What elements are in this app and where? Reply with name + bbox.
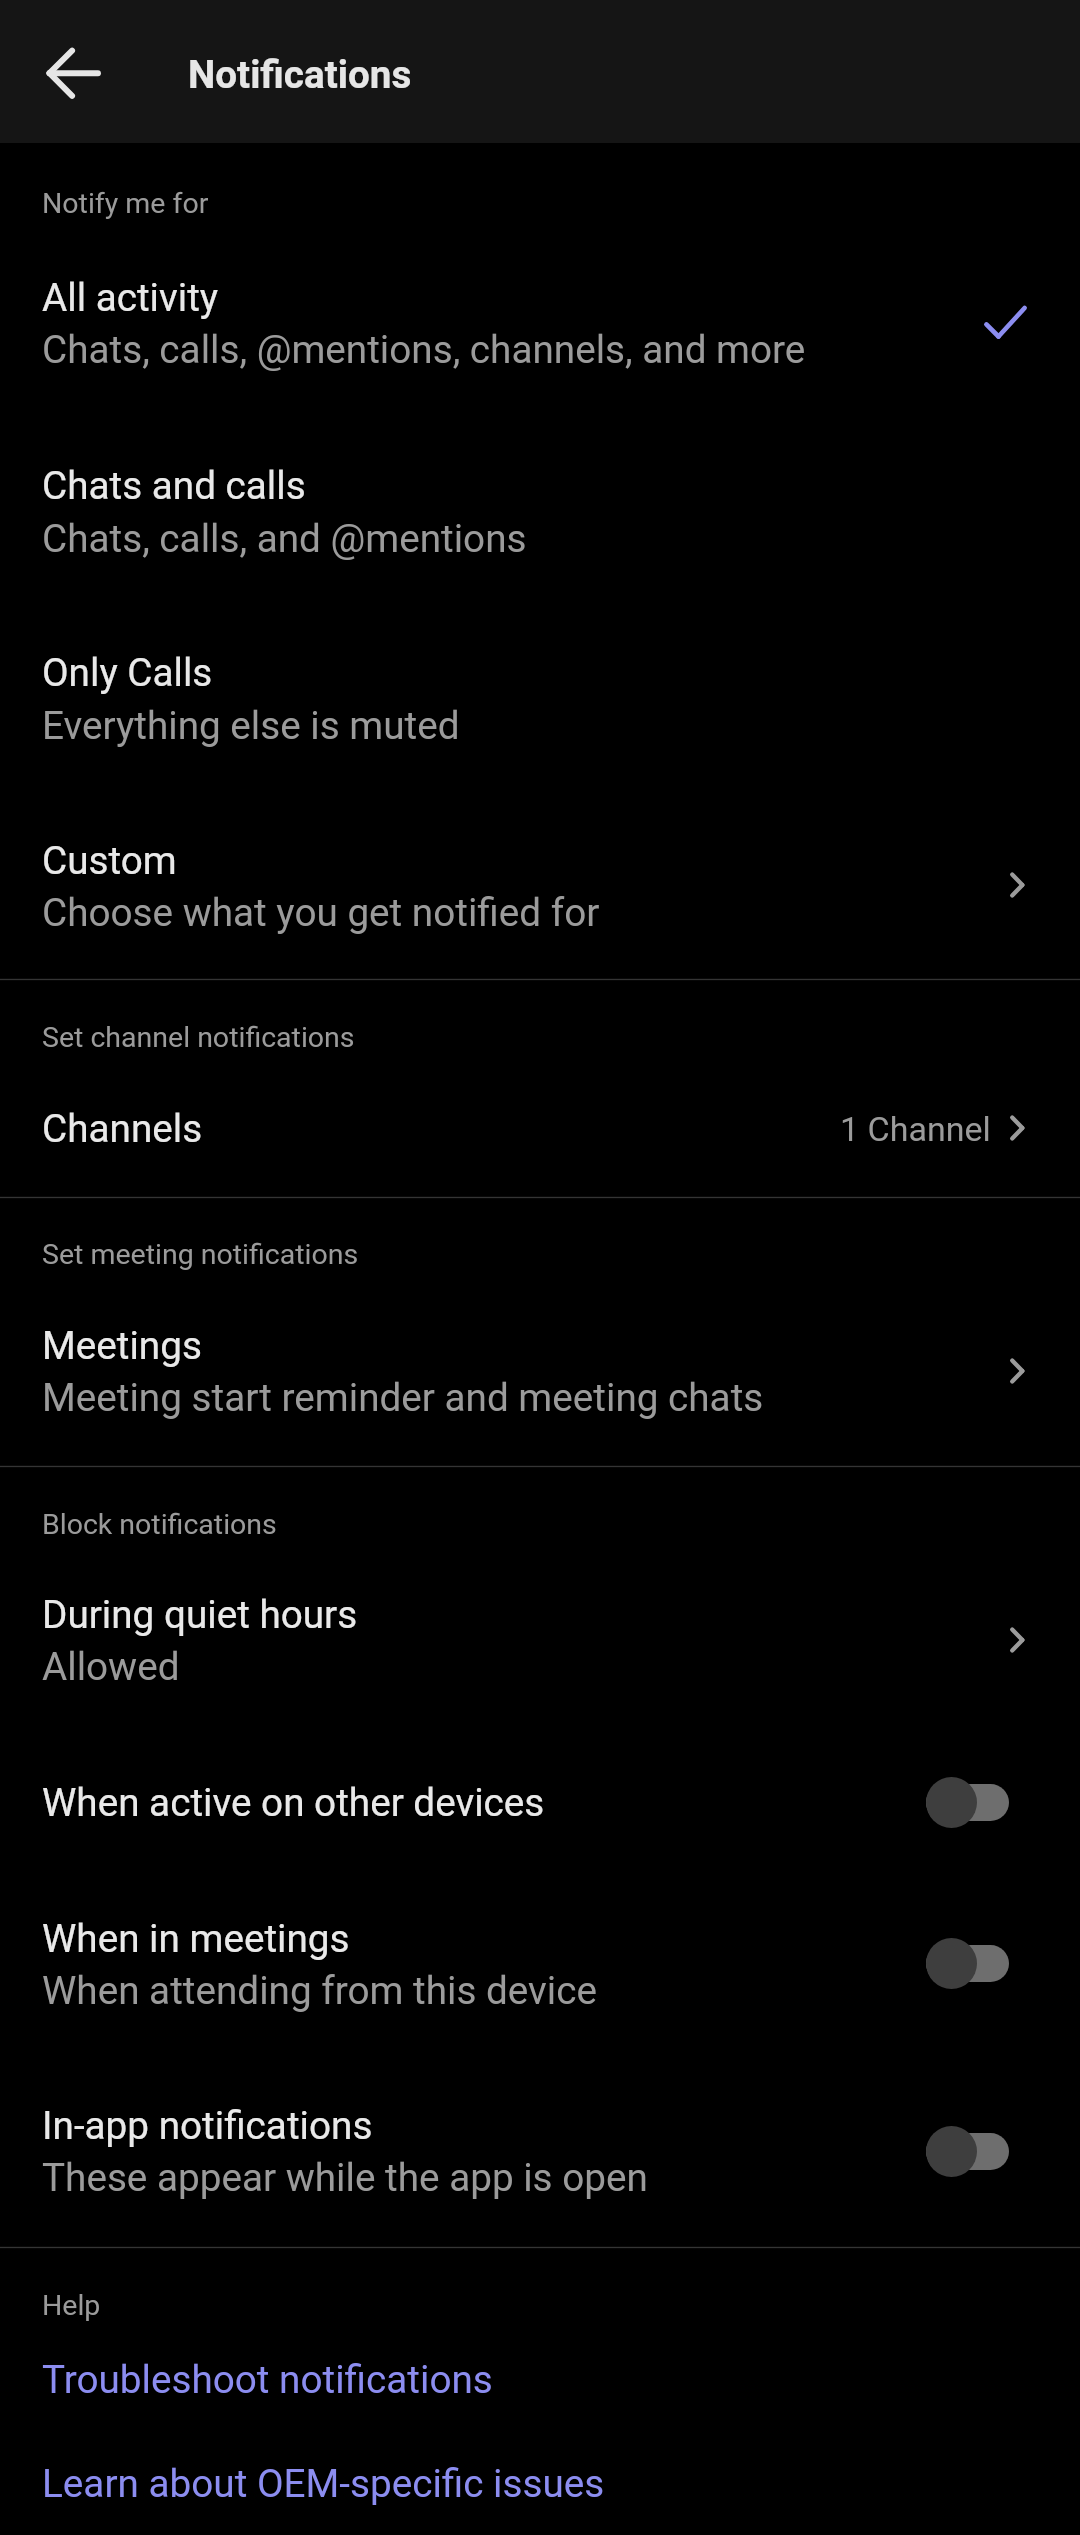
staticText: Allowed	[42, 1644, 180, 1689]
staticText: Notify me for	[42, 187, 209, 220]
staticText: Choose what you get notified for	[42, 890, 600, 935]
staticText: In-app notifications	[42, 2103, 373, 2148]
button[interactable]: Toggle, off	[912, 1927, 1023, 1999]
staticText: Notifications	[188, 52, 412, 97]
staticText: Set channel notifications	[42, 1021, 355, 1054]
button[interactable]: During quiet hours	[0, 1565, 1080, 1722]
staticText: Chats, calls, @mentions, channels, and m…	[42, 327, 806, 372]
button[interactable]: Toggle, off	[912, 2115, 1023, 2187]
staticText: When active on other devices	[42, 1780, 545, 1825]
other: Selected	[978, 302, 1038, 362]
staticText: Meeting start reminder and meeting chats	[42, 1375, 764, 1420]
staticText: Only Calls	[42, 650, 213, 695]
button[interactable]: Learn about OEM-specific issues	[0, 2440, 1080, 2535]
staticText: During quiet hours	[42, 1592, 358, 1637]
button[interactable]: Channels	[0, 1080, 1080, 1195]
button[interactable]: In-app notifications	[0, 2045, 1080, 2245]
button[interactable]: Only Calls	[0, 590, 1080, 780]
staticText: Custom	[42, 838, 177, 883]
button[interactable]: When in meetings	[0, 1858, 1080, 2045]
button[interactable]: Back	[17, 17, 129, 129]
staticText: Troubleshoot notifications	[42, 2357, 493, 2402]
staticText: These appear while the app is open	[42, 2155, 648, 2200]
button[interactable]: All activity	[0, 236, 1080, 400]
staticText: Everything else is muted	[42, 703, 460, 748]
button[interactable]: Troubleshoot notifications	[0, 2345, 1080, 2440]
staticText: 1 Channel	[840, 1109, 991, 1149]
staticText: When in meetings	[42, 1916, 350, 1961]
button[interactable]: Custom	[0, 780, 1080, 977]
staticText: Help	[42, 2289, 101, 2322]
staticText: Block notifications	[42, 1508, 277, 1541]
staticText: Chats and calls	[42, 463, 306, 508]
button[interactable]: When active on other devices	[0, 1722, 1080, 1858]
staticText: Meetings	[42, 1323, 202, 1368]
staticText: When attending from this device	[42, 1968, 597, 2013]
staticText: All activity	[42, 275, 219, 320]
button[interactable]: Toggle, off	[912, 1766, 1023, 1838]
staticText: Channels	[42, 1106, 203, 1151]
button[interactable]: Chats and calls	[0, 400, 1080, 590]
staticText: Learn about OEM-specific issues	[42, 2461, 605, 2506]
staticText: Set meeting notifications	[42, 1238, 359, 1271]
button[interactable]: Meetings	[0, 1297, 1080, 1464]
staticText: Chats, calls, and @mentions	[42, 516, 527, 561]
